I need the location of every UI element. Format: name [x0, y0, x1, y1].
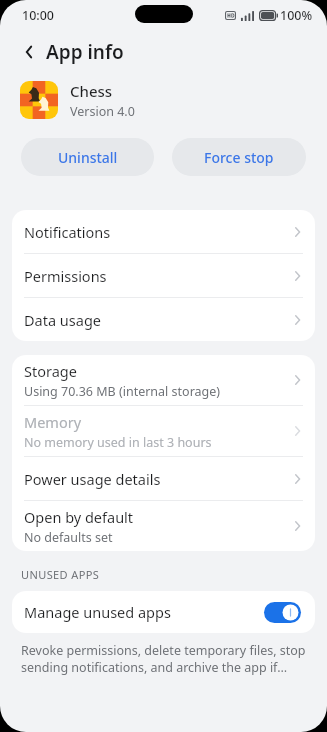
staticText: Open by default	[24, 507, 134, 527]
button[interactable]: Manage unused apps	[12, 591, 315, 633]
button[interactable]: Open by default	[12, 501, 315, 551]
staticText: Permissions	[24, 266, 107, 286]
staticText: Force stop	[204, 148, 274, 167]
staticText: UNUSED APPS	[21, 567, 100, 582]
staticText: Power usage details	[24, 469, 161, 489]
button[interactable]: Data usage	[12, 298, 315, 341]
staticText: No defaults set	[24, 529, 113, 546]
staticText: Data usage	[24, 310, 101, 330]
button[interactable]: Back	[14, 37, 44, 67]
staticText: Version 4.0	[70, 103, 135, 120]
staticText: Chess	[70, 81, 113, 101]
button[interactable]: Notifications	[12, 210, 315, 253]
staticText: App info	[46, 39, 124, 65]
staticText: Uninstall	[58, 148, 118, 167]
staticText: Revoke permissions, delete temporary fil…	[21, 642, 306, 676]
button[interactable]: Power usage details	[12, 457, 315, 500]
button[interactable]: Uninstall	[21, 138, 154, 176]
button[interactable]: Storage	[12, 355, 315, 405]
button[interactable]: Memory	[12, 406, 315, 456]
staticText: No memory used in last 3 hours	[24, 434, 212, 451]
staticText: Storage	[24, 361, 77, 381]
staticText: Manage unused apps	[24, 602, 264, 622]
staticText: Notifications	[24, 222, 111, 242]
staticText: 100%	[280, 7, 313, 24]
button[interactable]: Permissions	[12, 254, 315, 297]
button[interactable]: Force stop	[172, 138, 306, 176]
staticText: Using 70.36 MB (internal storage)	[24, 383, 221, 400]
staticText: 10:00	[22, 7, 55, 24]
staticText: Memory	[24, 412, 82, 432]
